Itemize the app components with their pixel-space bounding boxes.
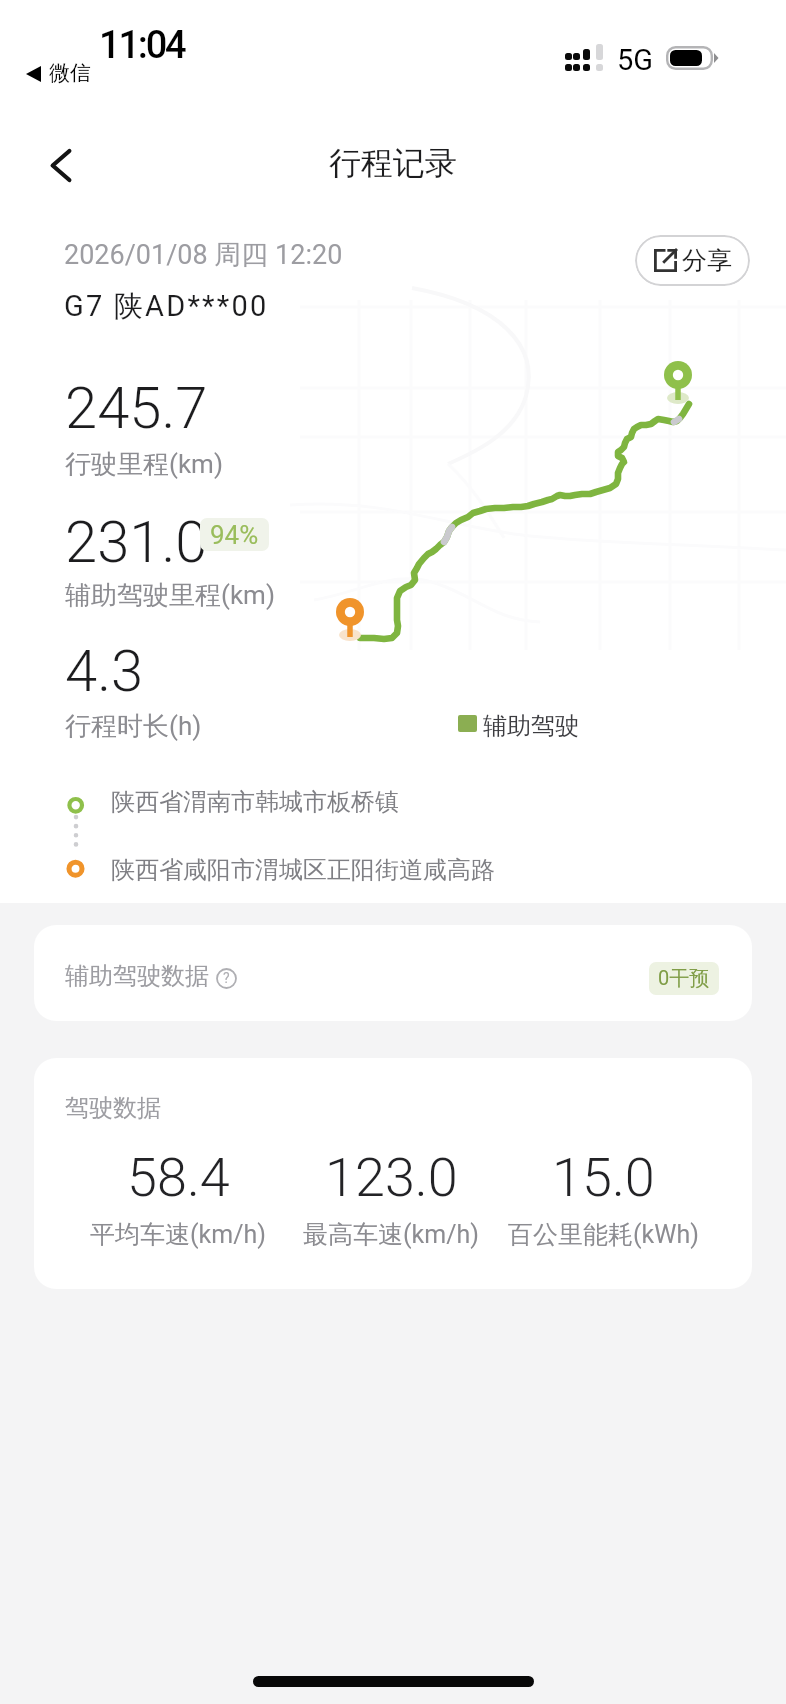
- staticText: 百公里能耗(kWh): [508, 1219, 699, 1250]
- button[interactable]: 分享: [635, 235, 750, 286]
- button[interactable]: 辅助驾驶数据: [34, 925, 752, 1021]
- staticText: G7 陕AD***00: [64, 288, 269, 325]
- staticText: 平均车速(km/h): [90, 1219, 266, 1250]
- staticText: 0干预: [658, 966, 710, 991]
- staticText: 2026/01/08 周四 12:20: [64, 238, 343, 272]
- staticText: 4.3: [65, 637, 144, 705]
- staticText: 辅助驾驶数据: [65, 961, 209, 991]
- staticText: 5G: [617, 43, 654, 77]
- staticText: 最高车速(km/h): [303, 1219, 479, 1250]
- staticText: 辅助驾驶里程(km): [65, 579, 275, 612]
- staticText: 231.0: [65, 508, 208, 576]
- staticText: ?: [223, 970, 230, 986]
- staticText: 分享: [682, 245, 732, 276]
- staticText: 微信: [49, 60, 91, 86]
- staticText: 陕西省咸阳市渭城区正阳街道咸高路: [111, 855, 495, 885]
- staticText: 94%: [210, 520, 259, 550]
- staticText: 行程记录: [329, 143, 457, 183]
- staticText: 58.4: [127, 1146, 230, 1209]
- staticText: 辅助驾驶: [483, 711, 579, 741]
- button[interactable]: Back: [30, 132, 92, 198]
- staticText: 驾驶数据: [65, 1093, 161, 1123]
- staticText: 行程时长(h): [65, 710, 202, 743]
- button[interactable]: 驾驶数据: [34, 1058, 752, 1289]
- staticText: 245.7: [65, 374, 208, 442]
- staticText: 11:04: [99, 23, 185, 68]
- staticText: 陕西省渭南市韩城市板桥镇: [111, 787, 399, 817]
- staticText: 123.0: [325, 1146, 458, 1209]
- staticText: 15.0: [552, 1146, 655, 1209]
- staticText: 行驶里程(km): [65, 448, 223, 481]
